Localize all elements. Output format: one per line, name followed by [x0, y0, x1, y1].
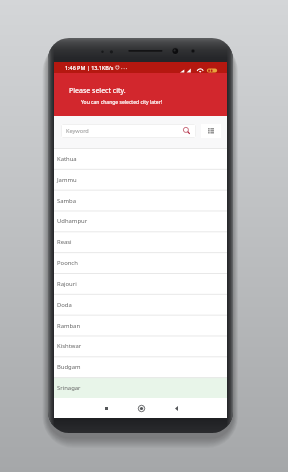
button[interactable]: Jammu	[54, 169, 227, 190]
staticText: Rajouri	[57, 280, 77, 288]
staticText: Please select city.	[69, 86, 126, 96]
staticText: Kishtwar	[57, 342, 82, 350]
button[interactable]: Budgam	[54, 356, 227, 377]
staticText: Ramban	[57, 322, 81, 330]
button[interactable]: Samba	[54, 190, 227, 211]
staticText: Reasi	[57, 238, 72, 246]
button[interactable]: Rajouri	[54, 273, 227, 294]
button[interactable]: Keyword	[61, 124, 196, 138]
staticText: Samba	[57, 197, 76, 205]
button[interactable]: Srinagar	[54, 377, 227, 398]
button[interactable]: Home	[132, 399, 150, 417]
staticText: Udhampur	[57, 217, 88, 225]
staticText: Kathua	[57, 155, 77, 163]
staticText: Jammu	[57, 176, 77, 184]
staticText: You can change selected city later!	[81, 99, 163, 106]
button[interactable]: Poonch	[54, 252, 227, 273]
staticText: Doda	[57, 301, 72, 309]
button[interactable]: Doda	[54, 294, 227, 315]
button[interactable]: Kathua	[54, 148, 227, 169]
button[interactable]: Toggle list view	[201, 124, 221, 138]
other: Search	[183, 127, 191, 135]
staticText: Keyword	[66, 127, 89, 135]
button[interactable]: Reasi	[54, 231, 227, 252]
staticText: Poonch	[57, 259, 78, 267]
button[interactable]: Recent apps	[97, 399, 115, 417]
button[interactable]: Kishtwar	[54, 335, 227, 356]
staticText: Budgam	[57, 363, 81, 371]
button[interactable]: Back	[167, 399, 185, 417]
button[interactable]: Ramban	[54, 315, 227, 336]
staticText: Srinagar	[57, 384, 81, 392]
staticText: 1:46 PM | 13.1KB/s	[65, 64, 114, 71]
button[interactable]: Udhampur	[54, 210, 227, 231]
